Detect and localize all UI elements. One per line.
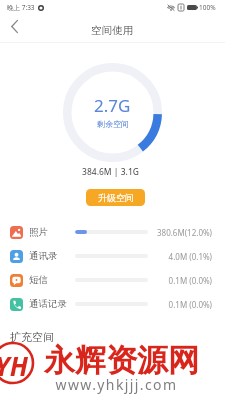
staticText: 4.0M (0.1%) <box>156 251 212 262</box>
staticText: 100% <box>199 3 216 12</box>
staticText: www.yhkjjj.com <box>4 375 225 394</box>
staticText: 380.6M(12.0%) <box>156 227 212 238</box>
staticText: YH <box>0 348 28 383</box>
staticText: 晚上 7:33 <box>7 3 35 12</box>
button[interactable]: 照片 <box>0 220 225 244</box>
staticText: 升级空间 <box>98 192 134 203</box>
staticText: 剩余空间 <box>97 119 129 129</box>
staticText: 空间使用 <box>91 24 133 37</box>
button[interactable]: Back <box>3 15 25 37</box>
button[interactable]: 短信 <box>0 268 225 292</box>
button[interactable]: 通话记录 <box>0 292 225 316</box>
staticText: 0.1M (0.0%) <box>156 275 212 286</box>
staticText: 扩充空间 <box>10 330 54 344</box>
staticText: 短信 <box>29 274 48 286</box>
staticText: 384.6M | 3.1G <box>0 166 223 178</box>
staticText: 2.7G <box>94 94 131 117</box>
button[interactable]: 通讯录 <box>0 244 225 268</box>
staticText: 0.1M (0.0%) <box>156 299 212 310</box>
staticText: 照片 <box>29 226 48 238</box>
staticText: 永辉资源网 <box>44 341 199 380</box>
staticText: 通话记录 <box>29 298 67 310</box>
staticText: 通讯录 <box>29 250 58 262</box>
button[interactable]: 升级空间 <box>86 189 145 206</box>
